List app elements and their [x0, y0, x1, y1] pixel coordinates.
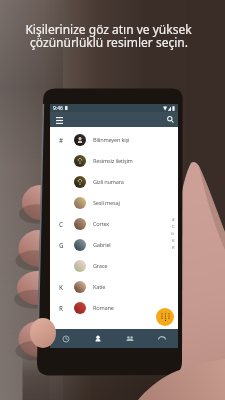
staticText: Gabriel: [93, 241, 111, 249]
button[interactable]: Resimsiz iletişim: [50, 150, 178, 171]
button[interactable]: Contacts: [82, 329, 114, 348]
staticText: K: [172, 238, 175, 244]
staticText: K: [59, 283, 63, 291]
staticText: C: [59, 220, 63, 228]
staticText: #: [172, 217, 175, 223]
button[interactable]: Calls: [146, 329, 178, 348]
button[interactable]: Search: [165, 114, 176, 125]
staticText: Katie: [93, 283, 106, 291]
staticText: Sesli mesaj: [93, 199, 120, 207]
button[interactable]: Dialpad: [156, 308, 174, 326]
staticText: C: [172, 224, 175, 230]
button[interactable]: Menu: [54, 115, 65, 126]
button[interactable]: Gizli numara: [50, 171, 178, 192]
button[interactable]: Grace: [50, 255, 178, 276]
staticText: G: [171, 231, 175, 237]
staticText: Cortex: [93, 220, 110, 228]
button[interactable]: R: [50, 297, 178, 318]
staticText: Resimsiz iletişim: [93, 157, 133, 165]
button[interactable]: Recents: [50, 329, 82, 348]
button[interactable]: K: [50, 276, 178, 297]
button[interactable]: #: [50, 129, 178, 150]
staticText: Bilinmeyen kişi: [93, 136, 130, 144]
staticText: G: [59, 241, 64, 249]
staticText: R: [59, 304, 63, 312]
staticText: Kişilerinize göz atın ve yüksek: [25, 21, 192, 37]
staticText: Romane: [93, 304, 114, 312]
staticText: #: [59, 136, 63, 144]
staticText: çözünürlüklü resimler seçin.: [30, 34, 188, 50]
staticText: R: [172, 245, 175, 251]
button[interactable]: Sesli mesaj: [50, 192, 178, 213]
button[interactable]: G: [50, 234, 178, 255]
button[interactable]: C: [50, 213, 178, 234]
staticText: Grace: [93, 262, 108, 270]
staticText: Gizli numara: [93, 178, 124, 186]
button[interactable]: Favorites: [114, 329, 146, 348]
staticText: 9:46: [53, 105, 63, 112]
